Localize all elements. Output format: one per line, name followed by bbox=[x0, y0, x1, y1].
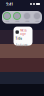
button[interactable]: Toggle bbox=[32, 12, 42, 22]
button[interactable]: Toggle bbox=[2, 12, 12, 22]
staticText: Label bbox=[35, 20, 39, 22]
staticText: Label bbox=[25, 20, 29, 22]
button[interactable]: Message bbox=[13, 27, 32, 46]
staticText: Message bbox=[20, 29, 27, 36]
button[interactable]: Toggle bbox=[12, 12, 22, 22]
button[interactable]: Toggle bbox=[22, 12, 32, 22]
staticText: Title bbox=[15, 37, 22, 41]
staticText: Label bbox=[5, 20, 9, 22]
staticText: Body text bbox=[15, 43, 27, 47]
staticText: Label bbox=[15, 20, 19, 22]
staticText: 9:41 bbox=[6, 1, 13, 7]
